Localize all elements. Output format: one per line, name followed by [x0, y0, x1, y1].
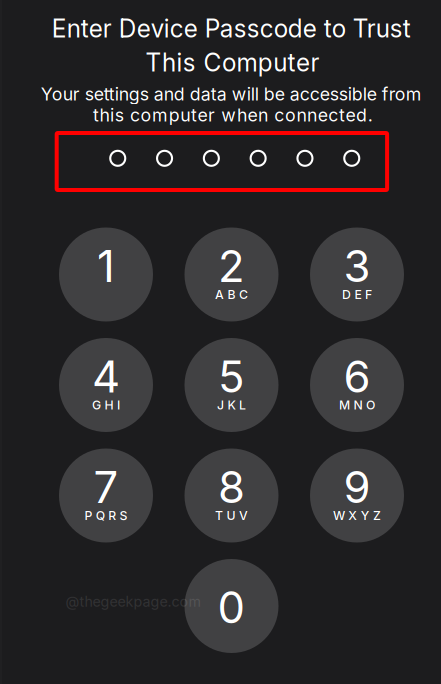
staticText: N [353, 398, 362, 412]
staticText: B [227, 287, 235, 302]
staticText: D [342, 287, 351, 302]
staticText: H [104, 398, 113, 412]
staticText: 2 [218, 240, 245, 292]
staticText: this computer when connected. [93, 104, 373, 126]
staticText: 9 [343, 461, 370, 513]
button[interactable]: 7 [59, 448, 153, 542]
staticText: E [354, 287, 361, 302]
staticText: 3 [343, 240, 370, 292]
staticText: G [92, 398, 101, 412]
staticText: I [117, 398, 120, 412]
staticText: 4 [92, 350, 120, 403]
staticText: X [348, 508, 357, 523]
staticText: F [365, 287, 372, 302]
staticText: 7 [93, 461, 118, 513]
staticText: Q [96, 508, 105, 523]
staticText: 6 [343, 350, 370, 403]
staticText: 8 [218, 461, 245, 513]
staticText: S [120, 508, 128, 523]
button[interactable]: 8 [184, 448, 278, 542]
staticText: U [226, 508, 235, 523]
staticText: Enter Device Passcode to Trust [52, 14, 411, 43]
staticText: R [108, 508, 116, 523]
button[interactable]: 9 [310, 448, 404, 542]
staticText: K [227, 398, 235, 412]
staticText: 5 [218, 350, 245, 403]
staticText: V [239, 508, 248, 523]
button[interactable]: 3 [310, 227, 404, 321]
button[interactable]: 0 [184, 559, 278, 653]
staticText: 0 [217, 581, 245, 634]
staticText: 1 [97, 240, 115, 292]
staticText: L [239, 398, 246, 412]
button[interactable]: 6 [310, 338, 404, 432]
staticText: This Computer [146, 48, 319, 77]
button[interactable]: 2 [184, 227, 278, 321]
staticText: A [215, 287, 224, 302]
staticText: O [366, 398, 375, 412]
staticText: P [84, 508, 92, 523]
button[interactable]: 5 [184, 338, 278, 432]
button[interactable]: 1 [59, 227, 153, 321]
staticText: Z [373, 508, 381, 523]
staticText: Your settings and data will be accessibl… [41, 83, 422, 105]
staticText: C [239, 287, 248, 302]
staticText: J [217, 398, 224, 412]
staticText: W [333, 508, 345, 523]
staticText: @thegeekpage.com [65, 593, 200, 610]
staticText: M [339, 398, 350, 412]
button[interactable]: 4 [59, 338, 153, 432]
staticText: T [215, 508, 223, 523]
staticText: Y [361, 508, 370, 523]
